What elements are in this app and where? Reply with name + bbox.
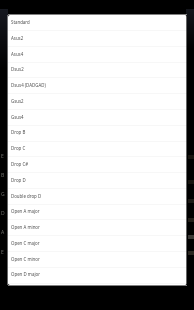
staticText: G [1, 191, 5, 198]
button[interactable]: Drop B [8, 125, 187, 141]
button[interactable]: Open D major [8, 267, 187, 283]
staticText: Gsus4 [11, 114, 24, 120]
staticText: Open A minor [11, 224, 40, 230]
button[interactable]: Dsus2 [8, 62, 187, 78]
button[interactable]: Open A minor [8, 220, 187, 236]
staticText: Open C major [11, 240, 40, 246]
button[interactable]: Double drop D [8, 189, 187, 205]
staticText: Gsus2 [11, 98, 24, 104]
staticText: Dsus2 [11, 66, 24, 72]
button[interactable]: Gsus4 [8, 110, 187, 126]
button[interactable]: Gsus2 [8, 94, 187, 110]
staticText: A [1, 229, 5, 236]
staticText: Dsus4 (DADGAD) [11, 82, 46, 88]
button[interactable]: Drop C# [8, 157, 187, 173]
button[interactable]: Drop C [8, 141, 187, 157]
button[interactable]: Asus4 [8, 47, 187, 63]
staticText: Standard [11, 19, 30, 25]
staticText: Drop C [11, 145, 26, 151]
staticText: B [1, 172, 5, 179]
staticText: D [1, 210, 5, 217]
button[interactable]: Asus2 [8, 31, 187, 47]
staticText: Drop C# [11, 161, 29, 167]
button[interactable]: Open A major [8, 204, 187, 220]
staticText: Double drop D [11, 193, 42, 199]
staticText: Drop D [11, 177, 26, 183]
button[interactable]: Drop D [8, 173, 187, 189]
button[interactable]: Open C minor [8, 252, 187, 268]
staticText: Drop B [11, 129, 26, 135]
button[interactable]: Open C major [8, 236, 187, 252]
staticText: Open D major [11, 271, 40, 277]
staticText: Asus4 [11, 51, 24, 57]
staticText: E [1, 249, 4, 256]
button[interactable]: Dsus4 (DADGAD) [8, 78, 187, 94]
staticText: Open A major [11, 208, 40, 214]
button[interactable]: Standard [8, 15, 187, 31]
staticText: Open C minor [11, 256, 40, 262]
staticText: E [1, 153, 4, 160]
staticText: Asus2 [11, 35, 24, 41]
